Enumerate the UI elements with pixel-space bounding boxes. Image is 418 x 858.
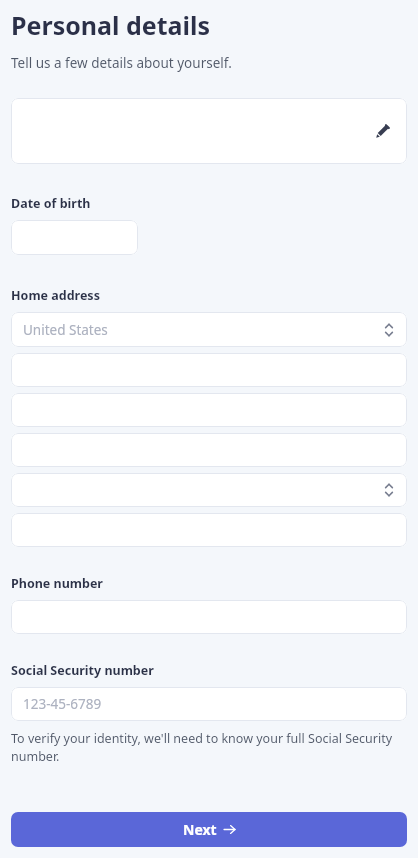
staticText: Social Security number [11, 662, 154, 679]
staticText: To verify your identity, we'll need to k… [11, 730, 407, 765]
button[interactable] [11, 473, 407, 507]
button[interactable]: Edit name [369, 118, 395, 144]
button[interactable] [11, 353, 407, 387]
staticText: Tell us a few details about yourself. [11, 54, 232, 72]
staticText: Date of birth [11, 195, 91, 212]
staticText: Home address [11, 287, 100, 304]
button[interactable]: Next [11, 812, 407, 847]
button[interactable]: United States [11, 312, 407, 347]
button[interactable]: 123-45-6789 [11, 687, 407, 721]
button[interactable] [11, 513, 407, 547]
staticText: 123-45-6789 [23, 695, 102, 713]
button[interactable] [11, 393, 407, 427]
staticText: Next [183, 820, 217, 839]
button[interactable] [11, 220, 138, 255]
staticText: United States [23, 321, 108, 339]
button[interactable] [11, 600, 407, 634]
staticText: Phone number [11, 575, 103, 592]
staticText: Personal details [11, 8, 211, 42]
button[interactable]: Edit name [11, 98, 407, 164]
button[interactable] [11, 433, 407, 467]
